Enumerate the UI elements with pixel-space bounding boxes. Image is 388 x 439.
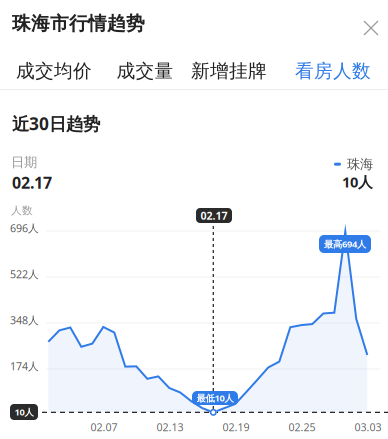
button[interactable]: 成交均价	[12, 54, 96, 88]
staticText: 02.13	[156, 420, 183, 434]
button[interactable]: 关闭	[354, 11, 388, 45]
staticText: 522人	[10, 267, 39, 281]
staticText: 02.17	[12, 172, 52, 193]
staticText: 珠海市行情趋势	[12, 12, 145, 35]
staticText: 10人	[14, 406, 33, 418]
staticText: 348人	[10, 313, 39, 327]
button[interactable]: 新增挂牌	[187, 54, 271, 88]
staticText: 174人	[10, 359, 39, 373]
staticText: 新增挂牌	[191, 59, 267, 82]
staticText: 珠海	[347, 156, 373, 172]
staticText: 成交量	[116, 59, 173, 82]
staticText: 02.19	[222, 420, 249, 434]
staticText: 696人	[10, 221, 39, 235]
button[interactable]: 看房人数	[291, 54, 375, 88]
staticText: 看房人数	[295, 59, 371, 82]
staticText: 03.03	[354, 420, 381, 434]
staticText: 最低10人	[196, 392, 233, 404]
staticText: 成交均价	[16, 59, 92, 82]
staticText: 人数	[11, 204, 33, 217]
staticText: 02.07	[90, 420, 117, 434]
staticText: 日期	[11, 154, 37, 170]
staticText: 02.17	[200, 208, 227, 223]
staticText: 10人	[342, 172, 373, 191]
button[interactable]: 成交量	[103, 54, 187, 88]
staticText: 02.25	[288, 420, 315, 434]
staticText: 近30日趋势	[12, 112, 100, 135]
staticText: 最高694人	[324, 238, 366, 250]
